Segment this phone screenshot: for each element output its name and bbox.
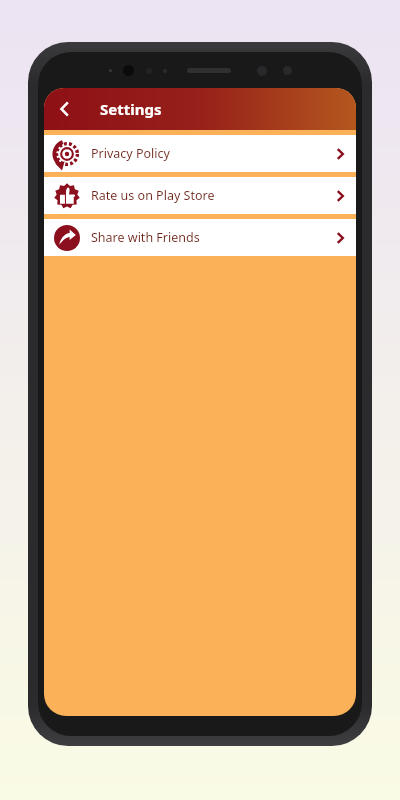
button[interactable]: Privacy Policy [44, 135, 356, 172]
staticText: Settings [100, 99, 162, 119]
staticText: Privacy Policy [91, 145, 170, 162]
button[interactable]: Share with Friends [44, 219, 356, 256]
button[interactable]: Rate us on Play Store [44, 177, 356, 214]
staticText: Share with Friends [91, 229, 200, 246]
staticText: Rate us on Play Store [91, 187, 215, 204]
button[interactable]: Back [44, 88, 86, 130]
